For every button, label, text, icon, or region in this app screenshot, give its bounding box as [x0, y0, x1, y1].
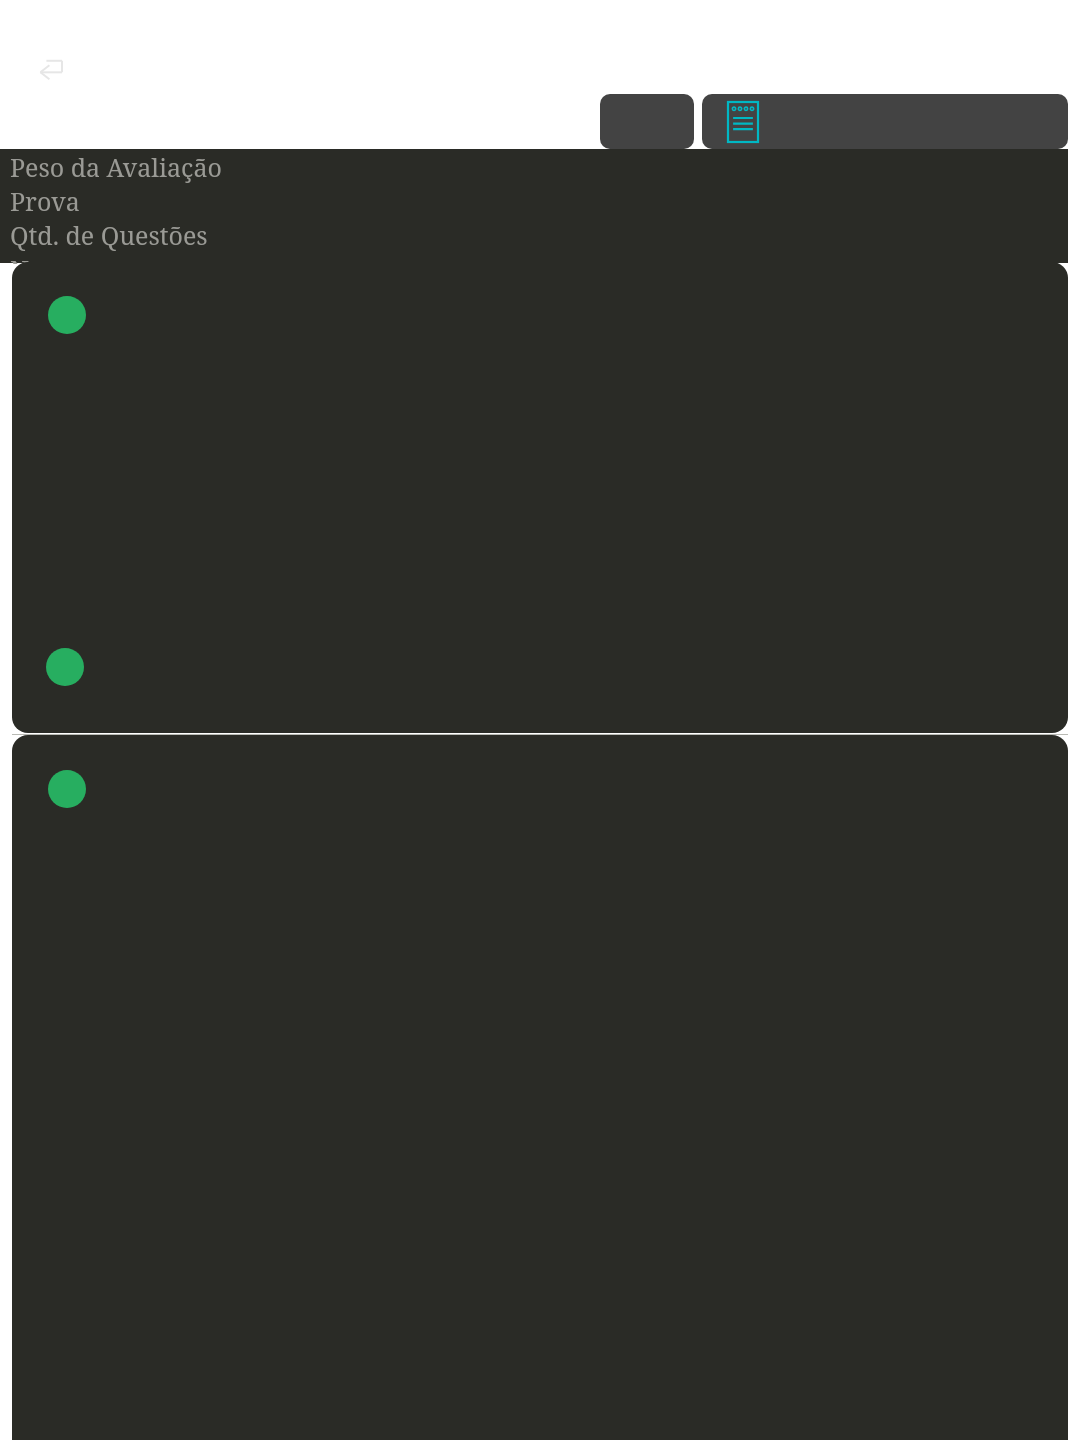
- button[interactable]: Anotações: [702, 94, 1068, 149]
- staticText: Qtd. de Questões: [10, 218, 208, 252]
- button[interactable]: [12, 735, 1068, 1440]
- staticText: Prova: [10, 184, 80, 218]
- staticText: Peso da Avaliação: [10, 150, 222, 184]
- other: Bloco de notas: [728, 102, 758, 142]
- button[interactable]: [12, 262, 1068, 733]
- button[interactable]: Voltar: [30, 50, 70, 86]
- staticText: Nota: [10, 252, 67, 264]
- button[interactable]: Opções: [600, 94, 694, 149]
